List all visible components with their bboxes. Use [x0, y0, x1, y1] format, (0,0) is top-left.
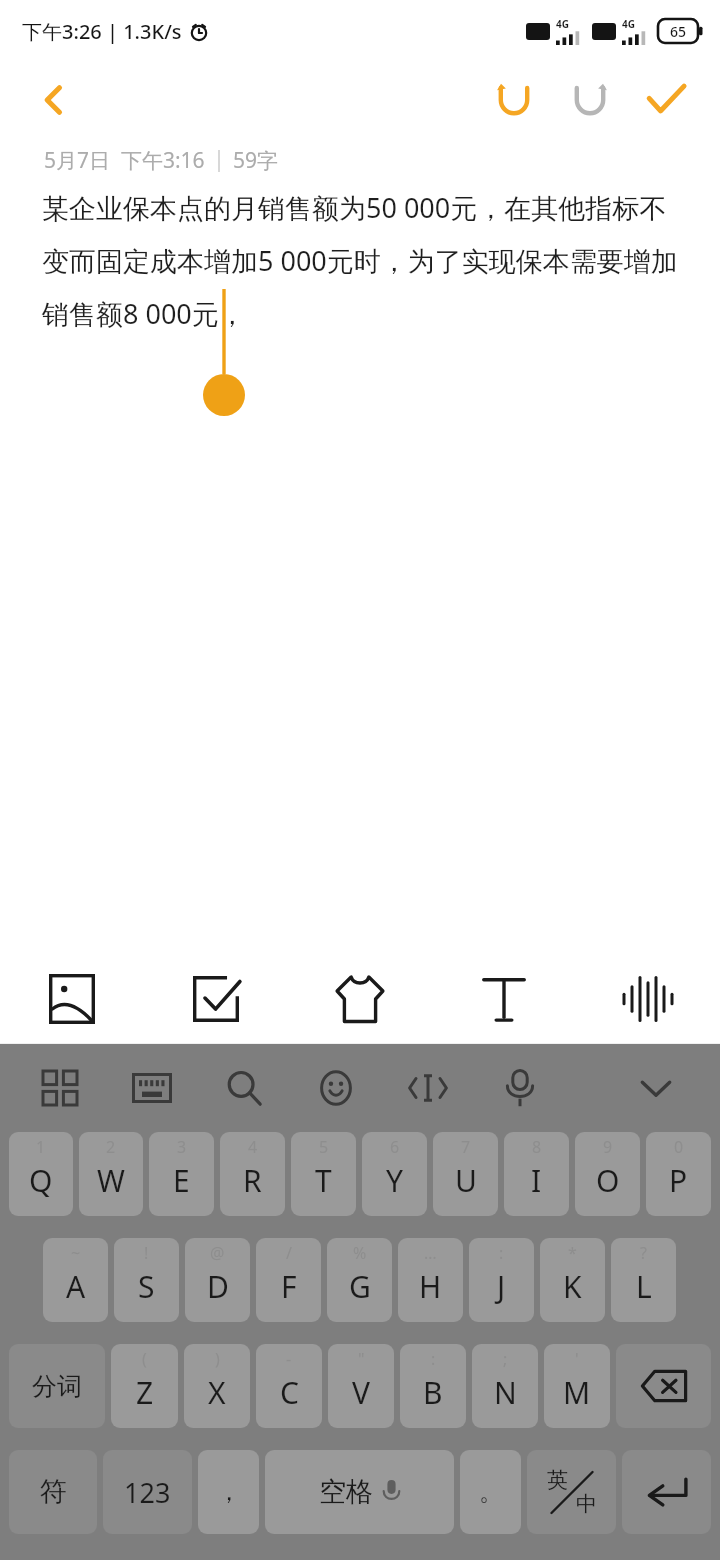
staticText: F	[281, 1266, 297, 1307]
staticText: T	[315, 1160, 332, 1201]
button[interactable]: 5	[291, 1132, 356, 1216]
staticText: S	[138, 1266, 155, 1307]
staticText: /	[286, 1242, 292, 1264]
button[interactable]: Backspace	[616, 1344, 711, 1428]
button[interactable]: :	[469, 1238, 534, 1322]
staticText: ?	[640, 1242, 647, 1264]
staticText: E	[173, 1160, 190, 1201]
button[interactable]: *	[540, 1238, 605, 1322]
staticText: 9	[603, 1136, 613, 1158]
button[interactable]: ~	[43, 1238, 108, 1322]
staticText: R	[243, 1160, 262, 1201]
staticText: 0	[674, 1136, 684, 1158]
staticText: 3	[177, 1136, 187, 1158]
button[interactable]: Switch language	[527, 1450, 616, 1534]
button[interactable]: …	[398, 1238, 463, 1322]
staticText: ;	[503, 1348, 508, 1370]
staticText: C	[280, 1372, 299, 1413]
staticText: 5月7日 下午3:16	[44, 146, 205, 175]
button[interactable]: 0	[646, 1132, 711, 1216]
button[interactable]: 符	[9, 1450, 97, 1534]
button[interactable]: ?	[611, 1238, 676, 1322]
button[interactable]: 7	[433, 1132, 498, 1216]
button[interactable]: 3	[149, 1132, 214, 1216]
button[interactable]: Undo	[476, 62, 552, 138]
button[interactable]: 9	[575, 1132, 640, 1216]
button[interactable]: Emoji	[290, 1044, 382, 1132]
button[interactable]: ，	[198, 1450, 259, 1534]
button[interactable]: 2	[79, 1132, 143, 1216]
button[interactable]: Back	[20, 66, 88, 134]
staticText: 2	[106, 1136, 116, 1158]
button[interactable]: 4	[220, 1132, 285, 1216]
button[interactable]: "	[328, 1344, 394, 1428]
button[interactable]: 分词	[9, 1344, 105, 1428]
staticText: M	[563, 1372, 591, 1413]
staticText: Y	[386, 1160, 403, 1201]
button[interactable]: 1	[9, 1132, 73, 1216]
staticText: N	[494, 1372, 517, 1413]
staticText: D	[207, 1266, 229, 1307]
button[interactable]: 123	[103, 1450, 192, 1534]
staticText: ，	[217, 1477, 241, 1507]
button[interactable]: :	[400, 1344, 466, 1428]
button[interactable]: Image	[0, 955, 144, 1043]
staticText: 1	[36, 1136, 46, 1158]
staticText: K	[563, 1266, 582, 1307]
button[interactable]: !	[114, 1238, 179, 1322]
staticText: L	[636, 1266, 652, 1307]
button[interactable]: ;	[472, 1344, 538, 1428]
staticText: Z	[136, 1372, 154, 1413]
staticText: 6	[390, 1136, 400, 1158]
button[interactable]: )	[184, 1344, 250, 1428]
staticText: 7	[461, 1136, 471, 1158]
staticText: !	[144, 1242, 149, 1264]
staticText: G	[349, 1266, 371, 1307]
staticText: 8	[532, 1136, 542, 1158]
button[interactable]: Voice	[576, 955, 720, 1043]
staticText: X	[208, 1372, 226, 1413]
staticText: 5	[319, 1136, 329, 1158]
button[interactable]: Redo	[552, 62, 628, 138]
button[interactable]: Voice input	[474, 1044, 566, 1132]
button[interactable]: Move cursor	[382, 1044, 474, 1132]
staticText: V	[352, 1372, 370, 1413]
button[interactable]: Text format	[432, 955, 576, 1043]
staticText: 空格	[319, 1475, 373, 1509]
button[interactable]: 8	[504, 1132, 569, 1216]
button[interactable]: /	[256, 1238, 321, 1322]
staticText: 。	[479, 1477, 503, 1507]
staticText: 4G	[556, 17, 569, 31]
button[interactable]: %	[327, 1238, 392, 1322]
staticText: 分词	[32, 1371, 82, 1402]
staticText: U	[455, 1160, 477, 1201]
staticText: H	[419, 1266, 442, 1307]
staticText: A	[66, 1266, 86, 1307]
staticText: P	[669, 1160, 688, 1201]
button[interactable]: '	[544, 1344, 610, 1428]
staticText: I	[531, 1160, 542, 1201]
button[interactable]: Hide keyboard	[616, 1048, 696, 1128]
button[interactable]: Enter	[622, 1450, 711, 1534]
button[interactable]: Search	[198, 1044, 290, 1132]
staticText: 65	[670, 22, 687, 41]
button[interactable]: 6	[362, 1132, 427, 1216]
staticText: %	[353, 1242, 367, 1264]
button[interactable]: (	[111, 1344, 178, 1428]
button[interactable]: Keyboard layout	[106, 1044, 198, 1132]
button[interactable]: Sticker	[288, 955, 432, 1043]
staticText: 下午3:26 | 1.3K/s	[22, 18, 182, 45]
button[interactable]: Keyboard modes	[14, 1044, 106, 1132]
button[interactable]: Space	[265, 1450, 454, 1534]
button[interactable]: Checklist	[144, 955, 288, 1043]
button[interactable]: @	[185, 1238, 250, 1322]
button[interactable]: 。	[460, 1450, 521, 1534]
button[interactable]: -	[256, 1344, 322, 1428]
staticText: 4	[248, 1136, 258, 1158]
button[interactable]: Done	[628, 62, 704, 138]
